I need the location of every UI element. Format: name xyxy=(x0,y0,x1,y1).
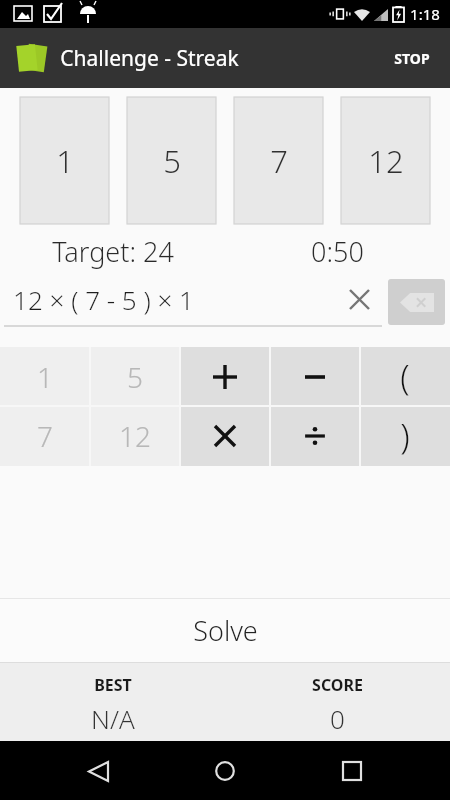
staticText: 7 xyxy=(270,140,288,182)
button[interactable]: Home xyxy=(196,742,254,800)
staticText: SCORE xyxy=(312,674,363,696)
button[interactable]: BEST xyxy=(0,663,225,741)
button[interactable]: ( xyxy=(360,347,450,406)
staticText: 12 xyxy=(119,417,151,455)
staticText: STOP xyxy=(394,49,430,68)
button[interactable]: Clear xyxy=(342,282,376,316)
button[interactable]: 1 xyxy=(0,347,90,406)
staticText: ( xyxy=(400,354,410,400)
button[interactable]: SCORE xyxy=(225,663,450,741)
staticText: 5 xyxy=(163,140,181,182)
button[interactable]: STOP xyxy=(388,39,436,78)
button[interactable]: 12 xyxy=(341,97,430,224)
button[interactable]: Solve xyxy=(0,599,450,662)
button[interactable]: 12 xyxy=(90,406,180,466)
staticText: 5 xyxy=(127,358,143,396)
button[interactable] xyxy=(270,347,360,406)
button[interactable]: Recent apps xyxy=(323,742,381,800)
staticText: 1:18 xyxy=(410,4,440,24)
staticText: 12 xyxy=(368,140,404,182)
staticText: N/A xyxy=(91,701,135,736)
button[interactable]: 7 xyxy=(0,406,90,466)
button[interactable] xyxy=(270,406,360,466)
staticText: 1 xyxy=(37,358,53,396)
staticText: Solve xyxy=(193,612,258,649)
staticText: BEST xyxy=(94,674,132,696)
staticText: 1 xyxy=(56,140,74,182)
staticText: Challenge - Streak xyxy=(60,44,239,73)
button[interactable]: ) xyxy=(360,406,450,466)
button[interactable]: 5 xyxy=(90,347,180,406)
staticText: 7 xyxy=(37,417,53,455)
button[interactable]: 7 xyxy=(234,97,323,224)
button[interactable] xyxy=(180,347,270,406)
button[interactable]: 1 xyxy=(20,97,109,224)
button[interactable]: Back xyxy=(69,742,127,800)
staticText: Target: 24 xyxy=(52,233,174,270)
button[interactable]: 5 xyxy=(127,97,216,224)
staticText: 0:50 xyxy=(311,233,364,270)
staticText: 0 xyxy=(330,701,345,736)
staticText: 12 × ( 7 - 5 ) × 1 xyxy=(13,282,194,317)
button[interactable] xyxy=(180,406,270,466)
staticText: ) xyxy=(400,413,410,459)
button[interactable]: Backspace xyxy=(388,279,445,325)
